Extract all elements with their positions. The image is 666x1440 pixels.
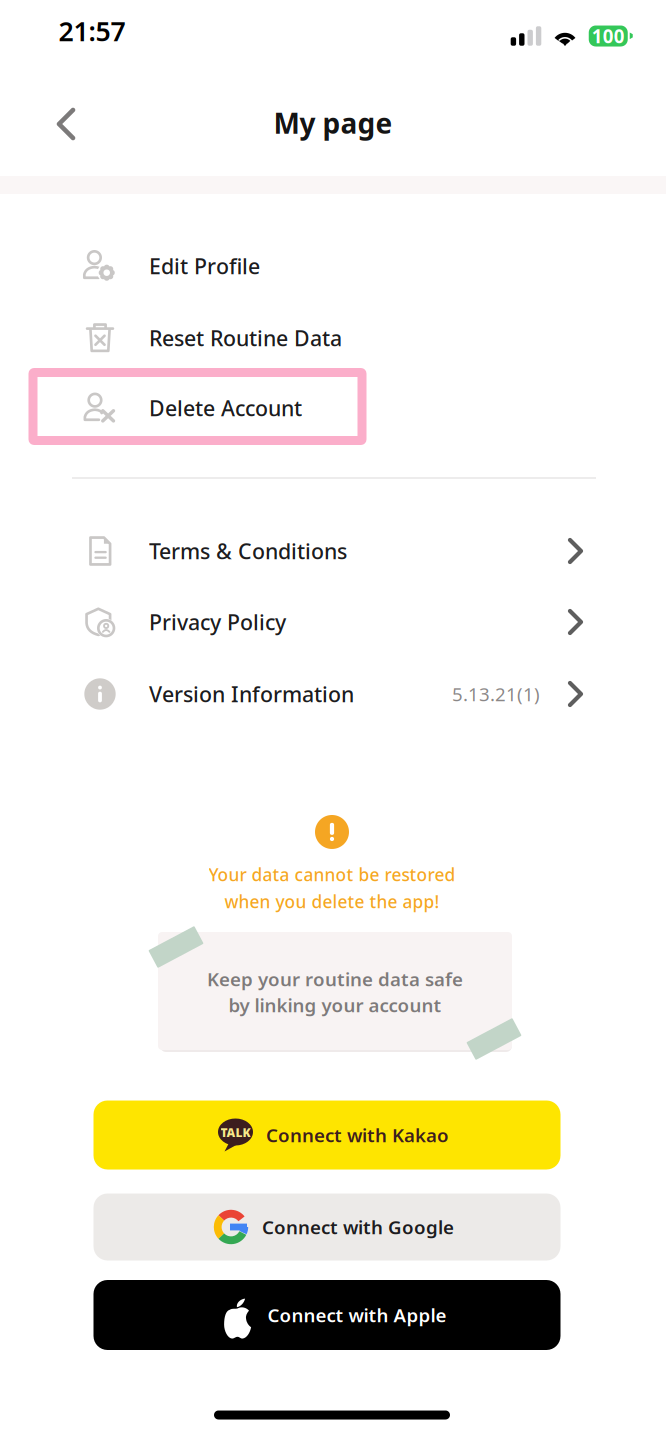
staticText: Reset Routine Data: [149, 324, 342, 352]
staticText: Connect with Apple: [267, 1303, 446, 1327]
button[interactable]: Privacy Policy: [0, 588, 666, 656]
button[interactable]: Delete Account: [0, 374, 666, 442]
button[interactable]: Connect with Apple: [93, 1280, 560, 1350]
button[interactable]: Edit Profile: [0, 232, 666, 300]
staticText: Terms & Conditions: [149, 537, 347, 565]
staticText: Connect with Google: [262, 1215, 454, 1239]
staticText: Connect with Kakao: [266, 1123, 449, 1147]
staticText: Privacy Policy: [149, 608, 286, 636]
staticText: 21:57: [58, 13, 125, 49]
button[interactable]: Connect with Google: [93, 1193, 560, 1260]
button[interactable]: TALK: [93, 1100, 560, 1169]
button[interactable]: Terms & Conditions: [0, 517, 666, 585]
staticText: when you delete the app!: [224, 890, 439, 913]
staticText: TALK: [220, 1124, 250, 1140]
staticText: Your data cannot be restored: [208, 863, 455, 886]
staticText: 5.13.21(1): [452, 682, 540, 706]
staticText: Version Information: [149, 680, 354, 708]
staticText: 100: [592, 24, 625, 48]
staticText: Keep your routine data safe: [207, 967, 463, 991]
button[interactable]: Back: [33, 83, 99, 165]
button[interactable]: Version Information: [0, 660, 666, 728]
staticText: Delete Account: [149, 394, 302, 422]
staticText: My page: [273, 104, 392, 142]
staticText: Edit Profile: [149, 252, 260, 280]
staticText: by linking your account: [228, 992, 441, 1017]
button[interactable]: Reset Routine Data: [0, 304, 666, 372]
